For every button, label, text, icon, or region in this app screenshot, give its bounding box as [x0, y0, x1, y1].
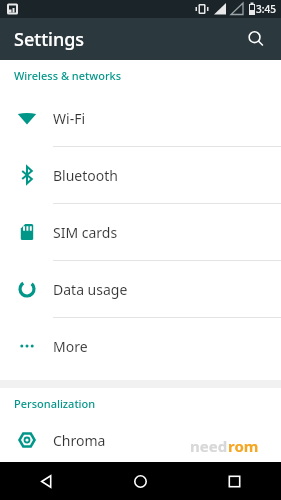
button[interactable]: Recent apps — [187, 462, 281, 500]
button[interactable]: Back — [0, 462, 93, 500]
button[interactable]: Data usage — [0, 261, 281, 318]
staticText: SIM cards — [53, 223, 118, 242]
staticText: need — [190, 436, 228, 456]
button[interactable]: Chroma — [0, 418, 281, 462]
staticText: Chroma — [53, 431, 106, 450]
staticText: Wireless & networks — [14, 68, 122, 83]
staticText: More — [53, 337, 88, 356]
button[interactable]: Bluetooth — [0, 147, 281, 204]
staticText: Personalization — [14, 396, 96, 411]
button[interactable]: Wi-Fi — [0, 90, 281, 147]
button[interactable]: SIM cards — [0, 204, 281, 261]
staticText: Wi-Fi — [53, 109, 86, 128]
button[interactable]: More — [0, 318, 281, 374]
staticText: Data usage — [53, 280, 128, 299]
button[interactable]: Search — [239, 22, 273, 56]
staticText: Settings — [14, 27, 85, 52]
staticText: 3:45 — [256, 2, 276, 16]
staticText: Bluetooth — [53, 166, 118, 185]
button[interactable]: Home — [93, 462, 187, 500]
staticText: rom — [228, 436, 259, 456]
